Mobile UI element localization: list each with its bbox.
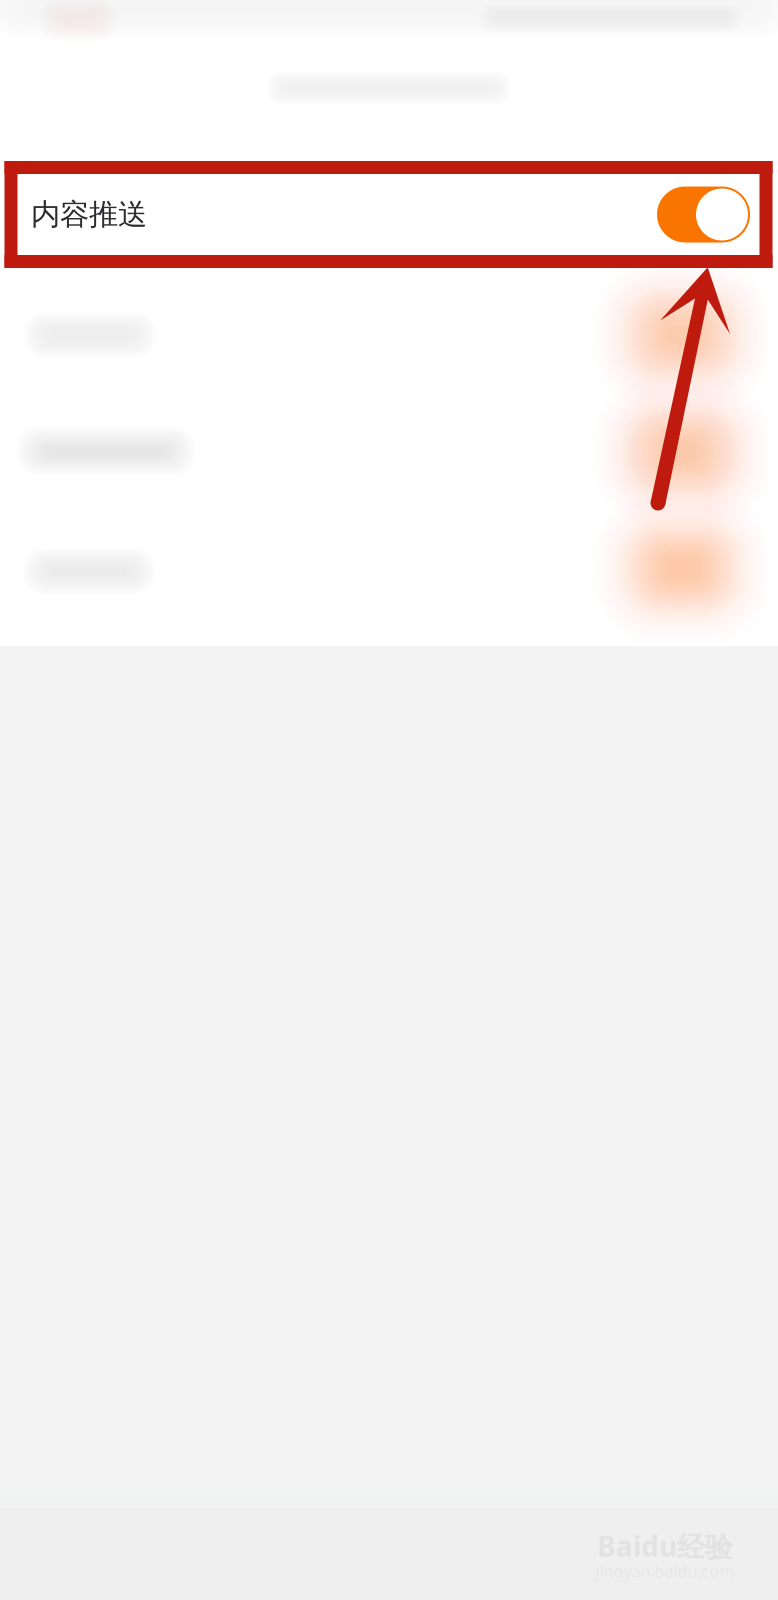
staticText: Baidu经验 bbox=[597, 1527, 733, 1565]
button[interactable]: 内容推送 bbox=[25, 174, 753, 255]
staticText: 内容推送 bbox=[31, 196, 147, 232]
